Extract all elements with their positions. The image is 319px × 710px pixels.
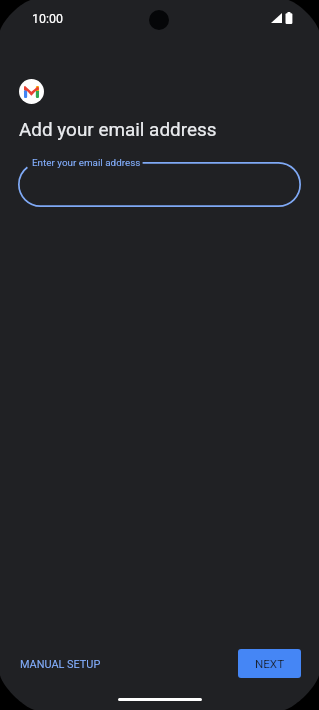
staticText: MANUAL SETUP <box>20 658 101 671</box>
staticText: NEXT <box>255 657 285 671</box>
button[interactable]: MANUAL SETUP <box>9 650 112 679</box>
staticText: 10:00 <box>32 11 63 26</box>
button[interactable]: Enter your email address <box>18 162 301 207</box>
staticText: Add your email address <box>19 118 217 140</box>
button[interactable]: NEXT <box>238 649 301 678</box>
staticText: Enter your email address <box>32 157 141 169</box>
